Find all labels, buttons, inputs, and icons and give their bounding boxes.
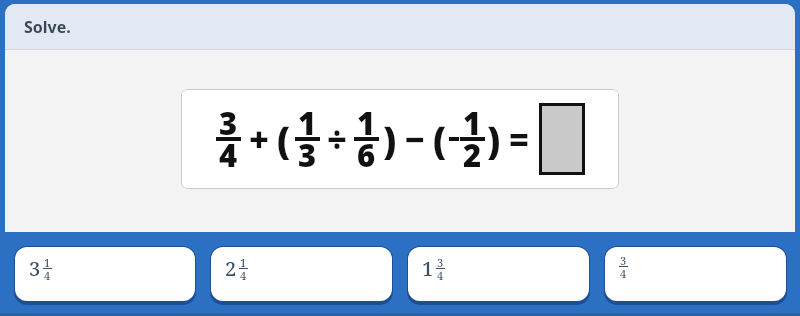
staticText: −	[405, 116, 425, 162]
staticText: 1	[463, 102, 482, 144]
button[interactable]: 2	[210, 246, 393, 305]
staticText: 4	[437, 268, 444, 283]
staticText: 4	[620, 266, 627, 281]
button[interactable]: 1	[407, 246, 590, 305]
staticText: 4	[219, 134, 238, 176]
staticText: 3	[219, 102, 238, 144]
staticText: 3	[437, 255, 444, 270]
staticText: 1	[422, 255, 434, 282]
staticText: 2	[463, 134, 482, 176]
staticText: =	[509, 116, 529, 162]
button[interactable]: 3	[14, 246, 196, 305]
staticText: 3	[298, 134, 317, 176]
staticText: (	[277, 114, 291, 164]
staticText: 3	[620, 253, 627, 268]
staticText: )	[383, 114, 397, 164]
staticText: 1	[357, 102, 376, 144]
staticText: 2	[225, 255, 237, 282]
staticText: +	[249, 116, 269, 162]
staticText: 4	[240, 268, 247, 283]
staticText: 6	[357, 134, 376, 176]
staticText: Solve.	[24, 16, 71, 38]
staticText: 1	[298, 102, 317, 144]
staticText: )	[487, 114, 501, 164]
staticText: (	[433, 114, 447, 164]
button[interactable]	[539, 103, 585, 175]
button[interactable]: 3	[604, 246, 787, 305]
staticText: 1	[240, 255, 247, 270]
staticText: 1	[44, 255, 51, 270]
staticText: ÷	[327, 116, 347, 162]
staticText: 3	[29, 255, 41, 282]
staticText: 4	[44, 268, 51, 283]
